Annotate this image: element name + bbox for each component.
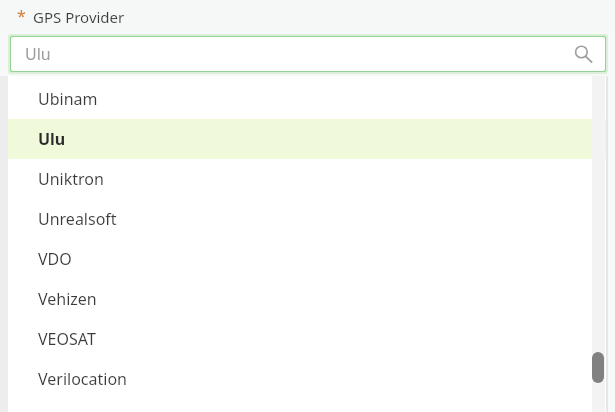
button[interactable]: [592, 76, 605, 412]
button[interactable]: Verilocation: [8, 359, 608, 399]
button[interactable]: Ubinam: [8, 79, 608, 119]
staticText: Uniktron: [38, 168, 104, 190]
staticText: Vehizen: [38, 288, 97, 310]
staticText: VDO: [38, 248, 72, 270]
staticText: GPS Provider: [33, 7, 125, 27]
staticText: VEOSAT: [38, 328, 96, 350]
button[interactable]: Uniktron: [8, 159, 608, 199]
button[interactable]: Search: [573, 44, 593, 64]
staticText: Verilocation: [38, 368, 127, 390]
button[interactable]: VDO: [8, 239, 608, 279]
button[interactable]: Unrealsoft: [8, 199, 608, 239]
staticText: Ulu: [25, 43, 51, 65]
staticText: *: [17, 5, 26, 27]
staticText: Unrealsoft: [38, 208, 117, 230]
staticText: Ubinam: [38, 88, 98, 110]
button[interactable]: VEOSAT: [8, 319, 608, 359]
button[interactable]: Ulu: [8, 119, 608, 159]
button[interactable]: Ulu: [11, 37, 605, 71]
button[interactable]: Vehizen: [8, 279, 608, 319]
staticText: Ulu: [38, 128, 66, 150]
button[interactable]: Scroll thumb: [592, 352, 604, 383]
